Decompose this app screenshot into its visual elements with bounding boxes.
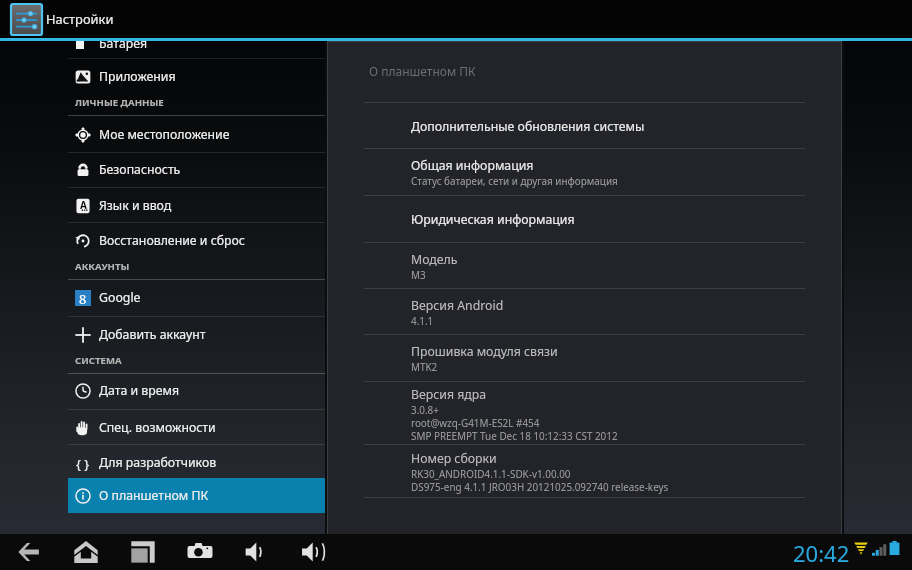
staticText: { } [76, 455, 90, 471]
staticText: 3.0.8+ [411, 403, 439, 416]
button[interactable]: Мое местоположение [68, 117, 327, 152]
staticText: Добавить аккаунт [99, 326, 206, 343]
staticText: SMP PREEMPT Tue Dec 18 10:12:33 CST 2012 [411, 429, 618, 442]
button[interactable]: Настройки [0, 0, 912, 38]
staticText: Безопасность [99, 161, 181, 178]
button[interactable]: Номер сборки [364, 445, 805, 497]
button[interactable]: Back [1, 534, 57, 570]
staticText: Для разработчиков [99, 454, 217, 471]
staticText: Юридическая информация [411, 211, 575, 228]
button[interactable]: A [68, 188, 327, 223]
button[interactable]: Версия Android [364, 289, 805, 334]
button[interactable]: Дополнительные обновления системы [364, 103, 805, 149]
button[interactable]: 8 [68, 280, 327, 315]
staticText: Мое местоположение [99, 126, 230, 143]
staticText: Прошивка модуля связи [411, 343, 558, 360]
button[interactable]: Версия ядра [364, 382, 805, 445]
button[interactable]: О планшетном ПК [68, 478, 327, 513]
staticText: Модель [411, 251, 458, 268]
staticText: 20:42 [793, 538, 850, 568]
staticText: СИСТЕМА [75, 354, 122, 367]
button[interactable]: Volume up [286, 534, 342, 570]
button[interactable]: Home [58, 534, 114, 570]
staticText: 8 [79, 290, 87, 306]
button[interactable]: Screenshot [172, 534, 228, 570]
staticText: О планшетном ПК [99, 487, 209, 504]
staticText: ЛИЧНЫЕ ДАННЫЕ [75, 96, 164, 109]
button[interactable]: Общая информация [364, 149, 805, 195]
button[interactable]: Юридическая информация [364, 196, 805, 242]
staticText: Версия ядра [411, 386, 487, 403]
staticText: root@wzq-G41M-ES2L #454 [411, 416, 540, 429]
staticText: 4.1.1 [411, 314, 434, 327]
staticText: A [80, 198, 87, 212]
button[interactable]: Recent apps [115, 534, 171, 570]
staticText: Восстановление и сброс [99, 232, 245, 249]
staticText: Google [99, 289, 141, 306]
button[interactable]: Спец. возможности [68, 410, 327, 445]
staticText: Батарея [99, 39, 148, 52]
button[interactable]: Модель [364, 243, 805, 288]
button[interactable]: Прошивка модуля связи [364, 335, 805, 380]
staticText: Спец. возможности [99, 419, 216, 436]
staticText: Дата и время [99, 382, 179, 399]
button[interactable]: Volume down [227, 534, 283, 570]
staticText: Приложения [99, 68, 176, 85]
staticText: Дополнительные обновления системы [411, 118, 645, 135]
button[interactable]: Безопасность [68, 152, 327, 187]
staticText: Статус батареи, сети и другая информация [411, 174, 618, 187]
staticText: Общая информация [411, 157, 534, 174]
button[interactable]: Восстановление и сброс [68, 223, 327, 258]
staticText: RK30_ANDROID4.1.1-SDK-v1.00.00 [411, 467, 571, 480]
button[interactable]: Добавить аккаунт [68, 317, 327, 352]
button[interactable]: { } [68, 445, 327, 480]
button[interactable]: Приложения [68, 59, 327, 94]
staticText: Версия Android [411, 297, 504, 314]
staticText: DS975-eng 4.1.1 JRO03H 20121025.092740 r… [411, 480, 669, 493]
staticText: M3 [411, 268, 426, 281]
staticText: Язык и ввод [99, 197, 172, 214]
staticText: Номер сборки [411, 450, 497, 467]
staticText: MTK2 [411, 360, 438, 373]
staticText: Настройки [46, 10, 114, 28]
staticText: О планшетном ПК [369, 63, 476, 79]
staticText: АККАУНТЫ [75, 260, 130, 273]
button[interactable]: Дата и время [68, 373, 327, 408]
